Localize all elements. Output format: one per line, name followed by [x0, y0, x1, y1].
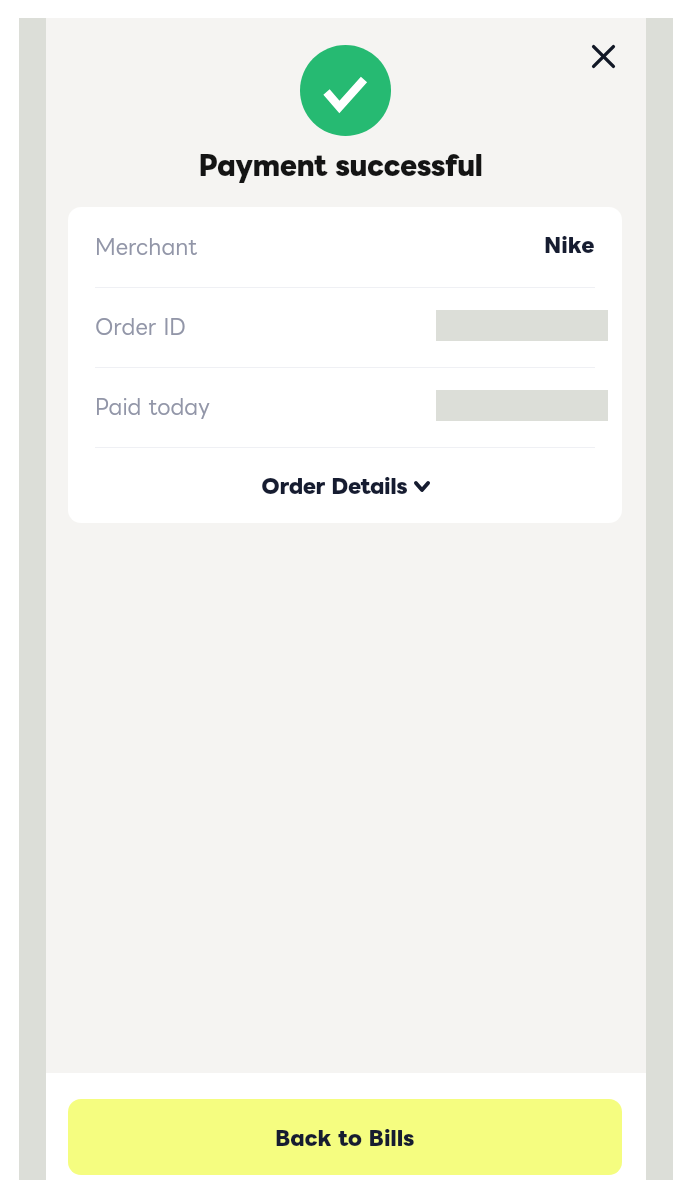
staticText: Paid today	[95, 394, 211, 417]
staticText: Nike	[544, 233, 595, 255]
staticText: Order ID	[95, 314, 186, 337]
button[interactable]: Back to Bills	[68, 1099, 622, 1175]
staticText: Back to Bills	[275, 1126, 415, 1148]
staticText: Order Details	[261, 474, 407, 496]
button[interactable]: Close	[579, 32, 628, 81]
button[interactable]: Order Details	[95, 448, 595, 523]
staticText: Merchant	[95, 234, 198, 257]
staticText: Payment successful	[198, 151, 483, 180]
